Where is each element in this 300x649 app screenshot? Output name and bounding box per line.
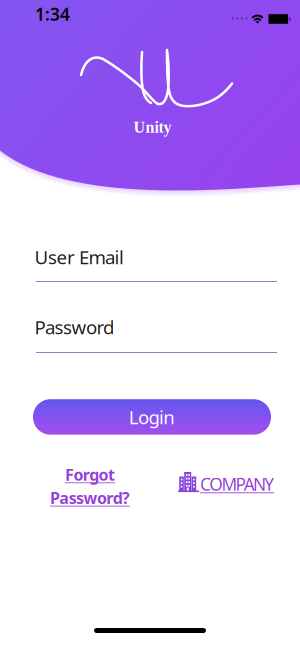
staticText: Unity: [133, 118, 171, 136]
staticText: Password: [34, 314, 114, 339]
staticText: User Email: [34, 244, 124, 269]
button[interactable]: Login: [33, 399, 271, 435]
staticText: 1:34: [35, 2, 70, 25]
staticText: Forgot: [65, 464, 115, 485]
button[interactable]: COMPANY: [178, 471, 274, 495]
staticText: Login: [129, 405, 175, 429]
button[interactable]: Forgot: [20, 464, 160, 508]
staticText: COMPANY: [200, 472, 274, 495]
staticText: Password?: [50, 487, 130, 508]
